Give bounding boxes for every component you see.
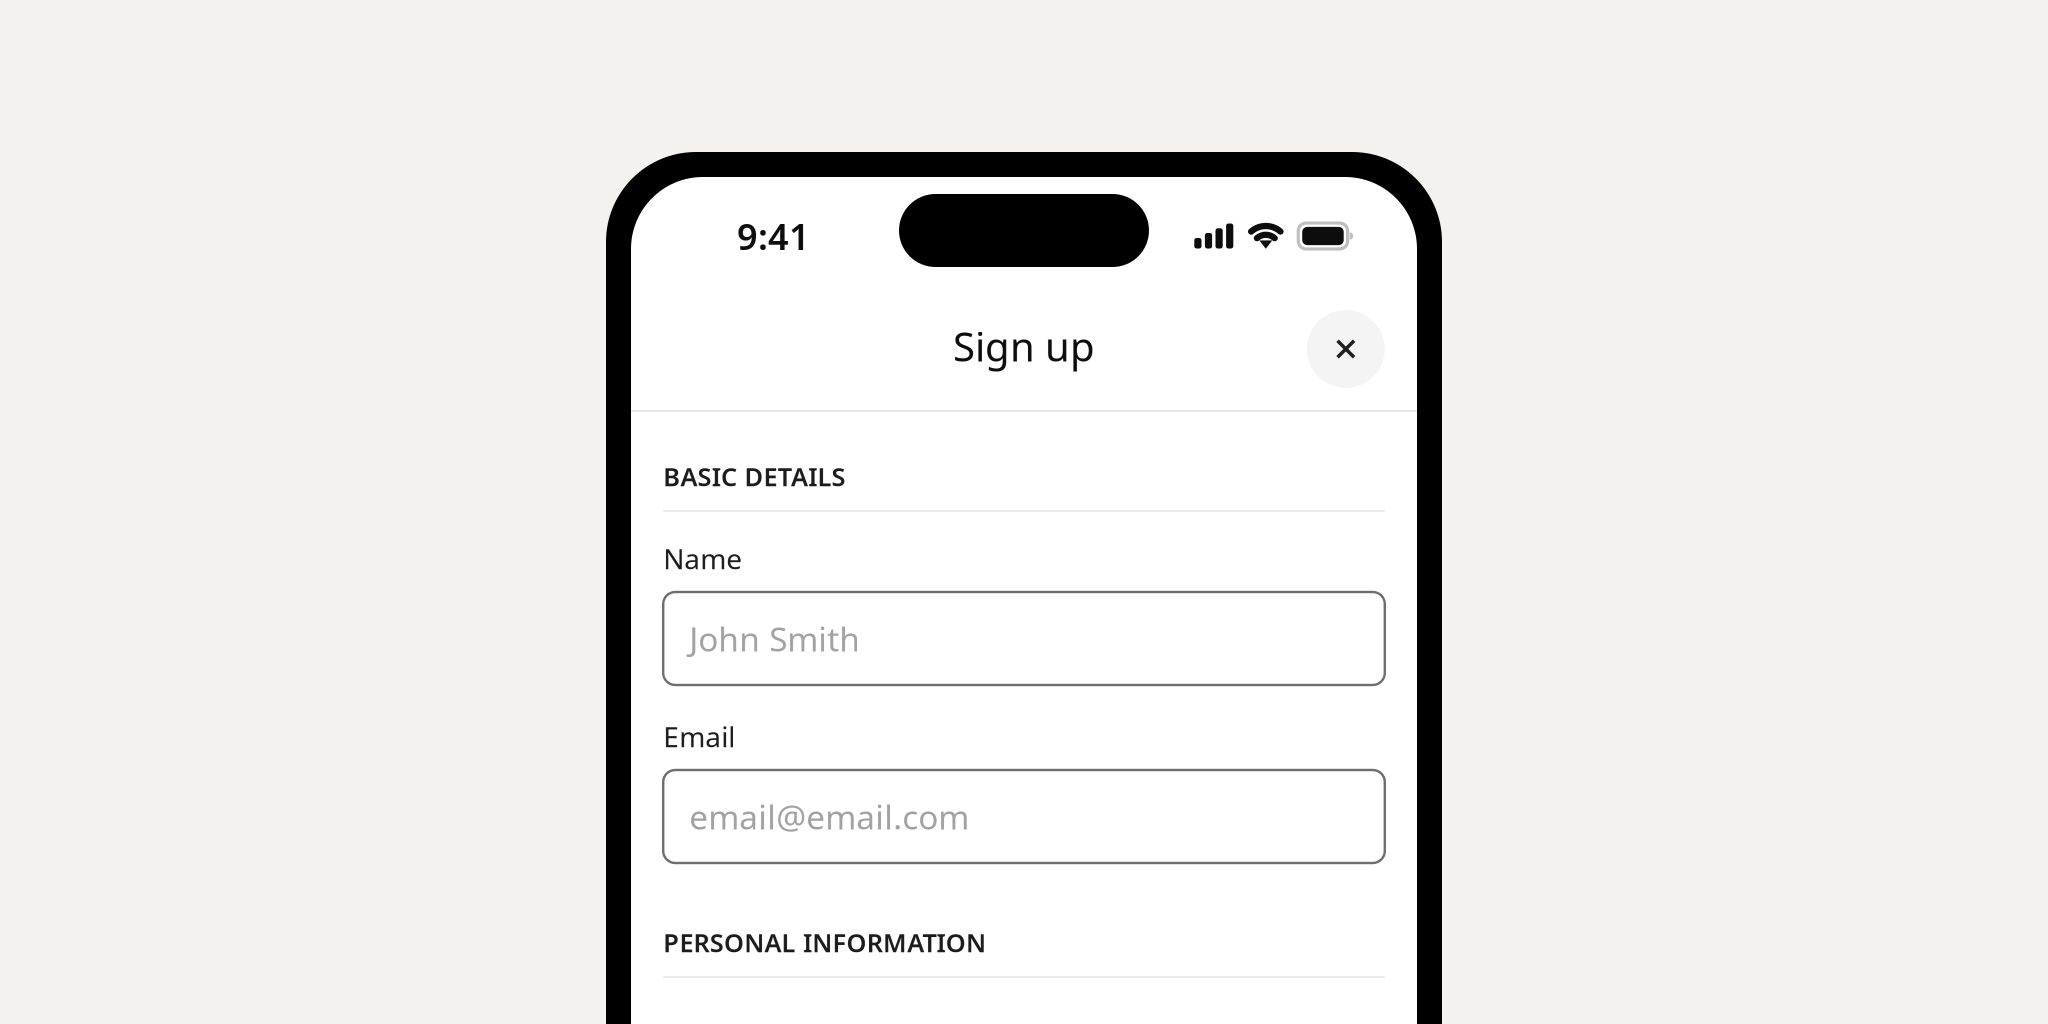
button[interactable]: John Smith [663, 592, 1385, 685]
staticText: John Smith [689, 616, 860, 661]
staticText: email@email.com [689, 794, 969, 839]
staticText: Email [663, 718, 735, 755]
staticText: 9:41 [737, 212, 810, 260]
staticText: BASIC DETAILS [663, 460, 846, 493]
button[interactable]: Close [1307, 310, 1385, 388]
staticText: PERSONAL INFORMATION [663, 926, 986, 959]
button[interactable]: email@email.com [663, 770, 1385, 863]
staticText: Sign up [953, 319, 1095, 372]
staticText: Name [663, 540, 742, 577]
